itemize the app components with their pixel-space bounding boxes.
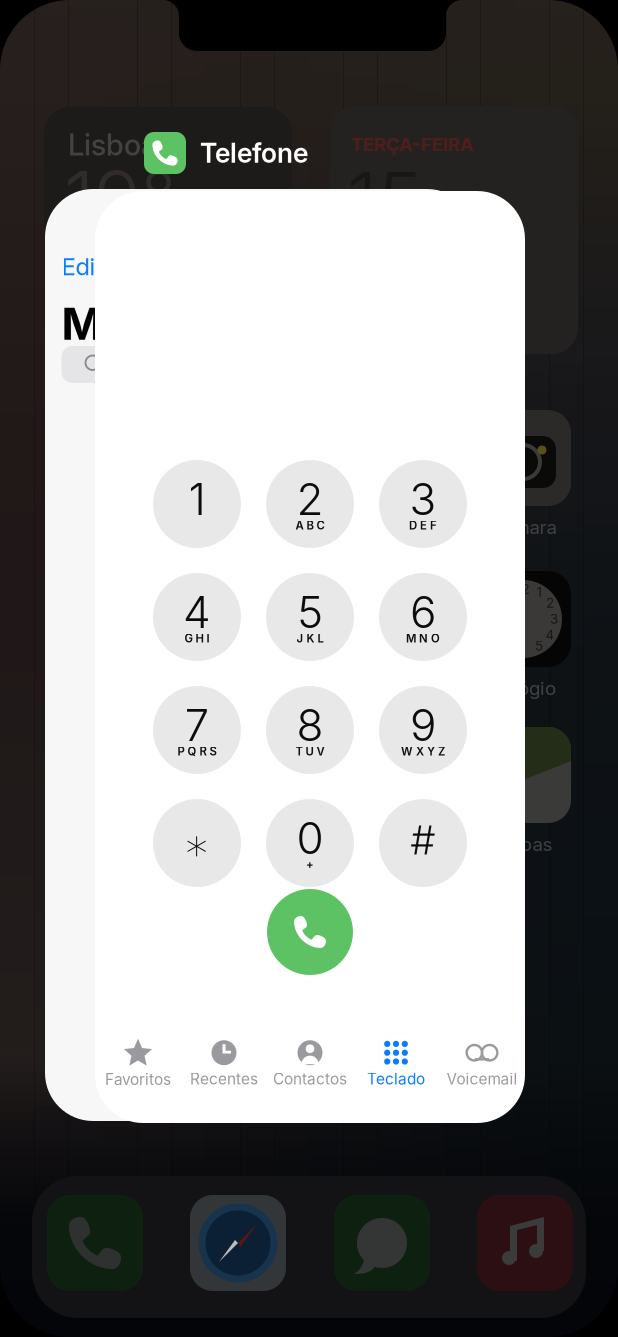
button[interactable]: #	[379, 799, 467, 887]
staticText: 9	[410, 698, 436, 752]
staticText: #	[411, 816, 435, 864]
button[interactable]: Music	[477, 1195, 573, 1291]
staticText: G H I	[184, 632, 209, 645]
button[interactable]: Recentes	[181, 1036, 267, 1092]
staticText: Recentes	[190, 1070, 258, 1088]
staticText: 7	[184, 698, 209, 752]
staticText: 15	[347, 153, 423, 247]
staticText: 0	[296, 811, 323, 865]
staticText: Câmara	[489, 516, 556, 539]
staticText: Mapas	[493, 833, 552, 856]
staticText: P Q R S	[177, 745, 216, 758]
staticText: 3	[409, 472, 436, 526]
staticText: 5	[297, 585, 323, 639]
staticText: W X Y Z	[401, 745, 445, 758]
staticText: Telefone	[200, 137, 308, 169]
staticText: Relógio	[490, 677, 556, 700]
staticText: 19°	[64, 152, 176, 246]
staticText: 1	[188, 472, 205, 526]
staticText: Favoritos	[105, 1070, 171, 1089]
staticText: D E F	[409, 519, 437, 532]
button[interactable]: 7	[153, 686, 241, 774]
button[interactable]: 5	[266, 573, 354, 661]
staticText: +	[306, 858, 314, 871]
button[interactable]: 8	[266, 686, 354, 774]
staticText: TERÇA-FEIRA	[351, 133, 474, 156]
staticText: A B C	[295, 519, 324, 532]
staticText: Contactos	[273, 1070, 347, 1088]
button[interactable]: ∗	[153, 799, 241, 887]
staticText: 1	[536, 584, 541, 600]
button[interactable]: Câmara	[475, 410, 571, 539]
staticText: 3	[550, 611, 558, 627]
staticText: M N O	[406, 632, 440, 645]
staticText: 2	[296, 472, 323, 526]
button[interactable]: 1	[153, 460, 241, 548]
staticText: 6	[410, 585, 436, 639]
staticText: Voicemail	[446, 1070, 517, 1088]
staticText: Teclado	[367, 1070, 425, 1088]
button[interactable]: Messages	[334, 1195, 430, 1291]
staticText: 4	[183, 585, 211, 639]
button[interactable]: 2	[266, 460, 354, 548]
button[interactable]: 3	[379, 460, 467, 548]
staticText: T U V	[295, 745, 324, 758]
button[interactable]: Favoritos	[95, 1036, 181, 1092]
button[interactable]: 4	[153, 573, 241, 661]
button[interactable]: 12	[475, 571, 571, 700]
staticText: 4	[545, 627, 554, 643]
staticText: 12	[516, 581, 529, 597]
button[interactable]: Mapas	[475, 727, 571, 856]
staticText: Editar	[61, 252, 125, 281]
staticText: Meus Contactos	[61, 297, 413, 350]
button[interactable]: 0	[266, 799, 354, 887]
button[interactable]: Teclado	[353, 1036, 439, 1092]
button[interactable]: Safari	[190, 1195, 286, 1291]
button[interactable]: 9	[379, 686, 467, 774]
button[interactable]: Voicemail	[439, 1036, 525, 1092]
staticText: 5	[535, 638, 543, 654]
button[interactable]: Contactos	[267, 1036, 353, 1092]
staticText: ∗	[183, 819, 211, 871]
staticText: Lisboa	[68, 127, 157, 162]
staticText: J K L	[296, 632, 323, 645]
staticText: 2	[546, 595, 554, 611]
staticText: 8	[296, 698, 323, 752]
button[interactable]: 6	[379, 573, 467, 661]
button[interactable]: Call	[267, 889, 353, 975]
button[interactable]: Phone	[47, 1195, 143, 1291]
